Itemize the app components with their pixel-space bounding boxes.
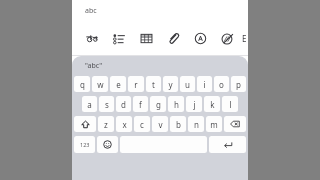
staticText: f: [139, 99, 142, 110]
staticText: g: [156, 99, 161, 110]
button[interactable]: 123: [74, 136, 95, 153]
button[interactable]: s: [99, 96, 114, 112]
button[interactable]: l: [222, 96, 238, 112]
button[interactable]: c: [134, 116, 150, 132]
button[interactable]: g: [150, 96, 166, 112]
button[interactable]: o: [214, 76, 229, 92]
staticText: m: [210, 119, 218, 130]
staticText: h: [174, 99, 179, 110]
staticText: q: [80, 79, 85, 90]
button[interactable]: p: [231, 76, 246, 92]
button[interactable]: k: [204, 96, 220, 112]
button[interactable]: Attach file: [160, 22, 187, 55]
staticText: i: [203, 79, 206, 90]
button[interactable]: "abc": [72, 56, 248, 75]
staticText: c: [140, 119, 144, 130]
button[interactable]: Effects: [214, 22, 241, 55]
staticText: n: [194, 119, 199, 130]
staticText: E: [242, 33, 247, 44]
button[interactable]: m: [206, 116, 222, 132]
staticText: y: [168, 79, 173, 90]
staticText: b: [176, 119, 181, 130]
button[interactable]: w: [92, 76, 108, 92]
button[interactable]: Table: [133, 22, 160, 55]
button[interactable]: f: [133, 96, 148, 112]
staticText: p: [236, 79, 241, 90]
staticText: z: [104, 119, 108, 130]
button[interactable]: i: [197, 76, 212, 92]
staticText: "abc": [85, 61, 103, 71]
staticText: 123: [80, 141, 90, 148]
button[interactable]: b: [170, 116, 186, 132]
button[interactable]: q: [74, 76, 90, 92]
button[interactable]: E: [241, 22, 248, 55]
staticText: d: [121, 99, 126, 110]
button[interactable]: d: [116, 96, 131, 112]
staticText: abc: [85, 6, 97, 16]
button[interactable]: Backspace: [224, 116, 246, 132]
button[interactable]: r: [128, 76, 144, 92]
staticText: t: [152, 79, 155, 90]
button[interactable]: Text format: [79, 22, 106, 55]
button[interactable]: y: [163, 76, 178, 92]
button[interactable]: abc: [72, 0, 248, 22]
button[interactable]: Emoji: [97, 136, 118, 153]
button[interactable]: z: [98, 116, 114, 132]
button[interactable]: h: [168, 96, 184, 112]
button[interactable]: u: [180, 76, 195, 92]
staticText: k: [210, 99, 215, 110]
staticText: v: [158, 119, 163, 130]
button[interactable]: Shift: [74, 116, 96, 132]
staticText: r: [134, 79, 138, 90]
button[interactable]: v: [152, 116, 168, 132]
button[interactable]: n: [188, 116, 204, 132]
button[interactable]: Markup: [187, 22, 214, 55]
button[interactable]: Bulleted list: [106, 22, 133, 55]
staticText: e: [116, 79, 121, 90]
staticText: s: [105, 99, 109, 110]
button[interactable]: Return: [209, 136, 246, 153]
button[interactable]: a: [82, 96, 97, 112]
staticText: w: [97, 79, 104, 90]
staticText: l: [229, 99, 232, 110]
staticText: j: [193, 99, 196, 110]
staticText: a: [87, 99, 92, 110]
button[interactable]: t: [146, 76, 161, 92]
staticText: x: [122, 119, 127, 130]
button[interactable]: e: [110, 76, 126, 92]
button[interactable]: j: [186, 96, 202, 112]
button[interactable]: x: [116, 116, 132, 132]
staticText: u: [185, 79, 190, 90]
staticText: o: [219, 79, 224, 90]
